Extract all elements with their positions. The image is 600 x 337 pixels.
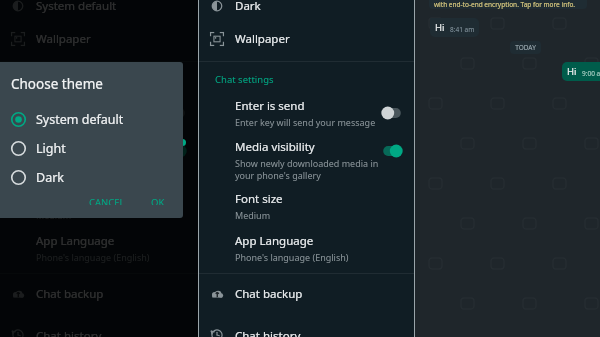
button[interactable]: Chat history xyxy=(199,328,414,337)
staticText: Enter key will send your message xyxy=(235,116,376,128)
button[interactable]: Media visibility xyxy=(0,138,198,182)
button[interactable]: System default xyxy=(0,0,198,20)
staticText: Medium xyxy=(235,209,271,221)
button[interactable]: System default xyxy=(0,105,183,134)
staticText: Choose theme xyxy=(11,75,103,93)
staticText: Show newly downloaded media in xyxy=(36,156,165,180)
staticText: Chat backup xyxy=(235,286,303,302)
button[interactable]: Toggle on xyxy=(165,144,187,158)
staticText: Media visibility xyxy=(235,139,315,155)
button[interactable]: Chat history xyxy=(0,328,198,337)
staticText: Hi xyxy=(435,21,445,34)
staticText: 8:41 am xyxy=(450,25,475,34)
staticText: Chat settings xyxy=(16,73,75,86)
staticText: Enter is send xyxy=(235,98,305,114)
staticText: Hi xyxy=(567,65,577,78)
button[interactable]: with end-to-end encryption. Tap for more… xyxy=(429,0,587,9)
staticText: CANCEL xyxy=(89,196,125,205)
staticText: Wallpaper xyxy=(36,31,91,47)
button[interactable]: Dark xyxy=(199,0,414,20)
staticText: your phone's gallery xyxy=(36,180,122,182)
button[interactable]: Font size xyxy=(199,189,414,223)
staticText: your phone's gallery xyxy=(235,169,321,181)
staticText: App Language xyxy=(235,233,314,249)
staticText: Dark xyxy=(36,169,64,186)
staticText: TODAY xyxy=(515,43,536,52)
staticText: Phone's language (English) xyxy=(235,251,349,263)
button[interactable]: Hi xyxy=(562,62,600,81)
button[interactable]: App Language xyxy=(0,231,198,265)
button[interactable]: Font size xyxy=(0,189,198,223)
staticText: Media visibility xyxy=(36,138,116,154)
staticText: System default xyxy=(36,111,124,128)
staticText: 9:00 am xyxy=(582,69,600,78)
staticText: Chat history xyxy=(36,328,102,337)
staticText: System default xyxy=(36,0,117,14)
button[interactable]: Enter is send xyxy=(199,96,414,129)
staticText: Chat backup xyxy=(36,286,104,302)
button[interactable]: Hi xyxy=(430,18,479,37)
staticText: Chat settings xyxy=(215,73,274,86)
staticText: Enter key will send your message xyxy=(36,114,165,129)
button[interactable]: Wallpaper xyxy=(0,20,198,58)
button[interactable]: Light xyxy=(0,134,183,163)
staticText: Wallpaper xyxy=(235,31,290,47)
staticText: Phone's language (English) xyxy=(36,251,150,263)
button[interactable]: Chat backup xyxy=(199,274,414,314)
button[interactable]: Wallpaper xyxy=(199,20,414,58)
button[interactable]: Dark xyxy=(0,163,183,192)
button[interactable]: Media visibility xyxy=(199,138,414,182)
staticText: OK xyxy=(151,196,165,205)
staticText: with end-to-end encryption. Tap for more… xyxy=(434,0,576,9)
staticText: Medium xyxy=(36,209,72,221)
button[interactable]: Enter is send xyxy=(0,96,198,129)
button[interactable]: App Language xyxy=(199,231,414,265)
button[interactable]: Chat backup xyxy=(0,274,198,314)
staticText: Font size xyxy=(235,191,283,207)
staticText: Chat history xyxy=(235,328,301,337)
button[interactable]: Toggle on xyxy=(381,144,403,158)
button[interactable]: OK xyxy=(145,192,171,209)
button[interactable]: Toggle off xyxy=(165,106,187,120)
button[interactable]: CANCEL xyxy=(83,192,131,209)
staticText: Light xyxy=(36,140,66,157)
staticText: Show newly downloaded media in xyxy=(235,157,379,169)
button[interactable]: Toggle off xyxy=(381,106,403,120)
staticText: App Language xyxy=(36,233,115,249)
staticText: Dark xyxy=(235,0,261,14)
